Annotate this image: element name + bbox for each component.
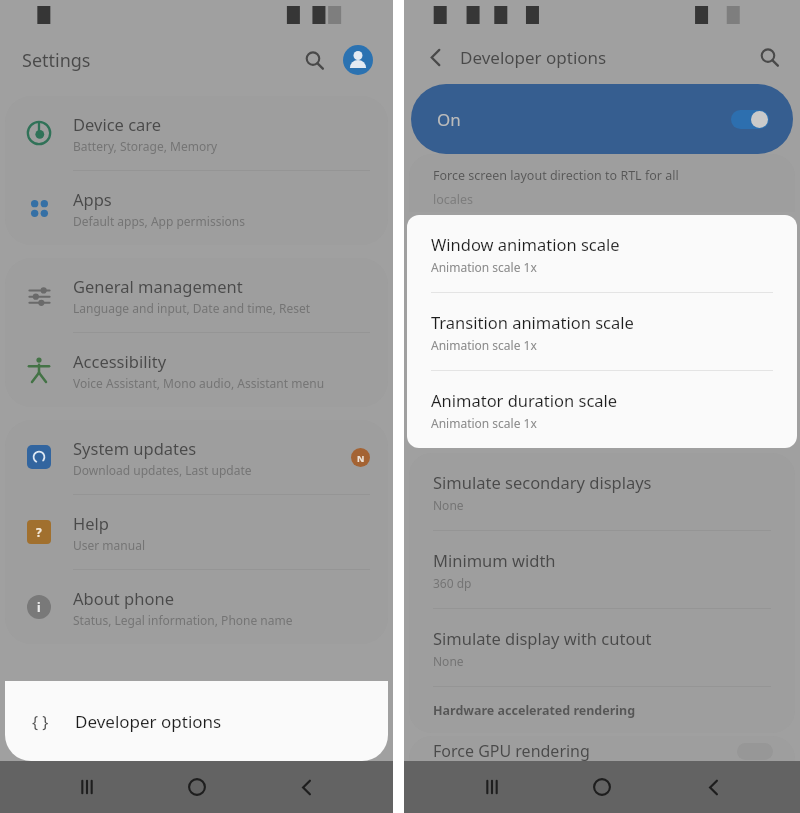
staticText: 360 dp (433, 575, 472, 591)
staticText: Voice Assistant, Mono audio, Assistant m… (73, 375, 325, 391)
staticText: Language and input, Date and time, Reset (73, 300, 311, 316)
button[interactable]: Device care (5, 96, 388, 171)
button[interactable]: Home (579, 764, 625, 810)
staticText: Animation scale 1x (431, 415, 537, 431)
button[interactable]: Home (174, 764, 220, 810)
button[interactable]: General management (5, 258, 388, 333)
button[interactable]: Apps (5, 171, 388, 245)
button[interactable]: Transition animation scale (407, 293, 797, 371)
staticText: General management (73, 275, 243, 297)
staticText: Animator duration scale (431, 389, 618, 411)
staticText: Animation scale 1x (431, 337, 537, 353)
button[interactable]: Simulate display with cutout (409, 609, 795, 687)
staticText: Force screen layout direction to RTL for… (433, 167, 679, 184)
staticText: None (433, 497, 464, 513)
button[interactable]: Back (414, 36, 456, 78)
staticText: On (437, 108, 461, 131)
staticText: Force GPU rendering (433, 740, 590, 761)
button[interactable]: ? (5, 495, 388, 570)
button[interactable]: Search (748, 36, 790, 78)
button[interactable]: Minimum width (409, 531, 795, 609)
button[interactable]: Back (283, 764, 329, 810)
button[interactable]: Account (337, 39, 379, 81)
staticText: Hardware accelerated rendering (433, 702, 636, 719)
staticText: Help (73, 512, 109, 534)
button[interactable]: Simulate secondary displays (409, 453, 795, 531)
staticText: Transition animation scale (431, 311, 634, 333)
staticText: Status, Legal information, Phone name (73, 612, 293, 628)
button[interactable]: Window animation scale (407, 215, 797, 293)
button[interactable]: i (5, 570, 388, 644)
button[interactable]: Search (293, 39, 335, 81)
staticText: ? (36, 524, 42, 540)
staticText: N (357, 452, 365, 464)
staticText: Developer options (460, 46, 607, 69)
staticText: Accessibility (73, 350, 167, 372)
staticText: System updates (73, 437, 197, 459)
button[interactable]: Animator duration scale (407, 371, 797, 448)
button[interactable]: Recents (64, 764, 110, 810)
staticText: Settings (22, 48, 91, 73)
button[interactable]: System updates (5, 420, 388, 495)
staticText: Window animation scale (431, 233, 620, 255)
staticText: Default apps, App permissions (73, 213, 245, 229)
staticText: { } (32, 711, 49, 733)
staticText: None (433, 653, 464, 669)
staticText: Simulate display with cutout (433, 627, 652, 649)
button[interactable]: Recents (469, 764, 515, 810)
button[interactable]: On (411, 84, 793, 154)
staticText: Animation scale 1x (431, 259, 537, 275)
staticText: Simulate secondary displays (433, 471, 652, 493)
staticText: Device care (73, 113, 162, 135)
staticText: Apps (73, 188, 112, 210)
staticText: locales (433, 191, 474, 208)
button[interactable]: Back (690, 764, 736, 810)
button[interactable]: Accessibility (5, 333, 388, 407)
staticText: Download updates, Last update (73, 462, 252, 478)
staticText: About phone (73, 587, 174, 609)
staticText: Battery, Storage, Memory (73, 138, 218, 154)
staticText: Developer options (75, 710, 222, 733)
staticText: User manual (73, 537, 145, 553)
staticText: Minimum width (433, 549, 556, 571)
button[interactable]: { } (5, 681, 388, 761)
staticText: i (37, 599, 41, 615)
